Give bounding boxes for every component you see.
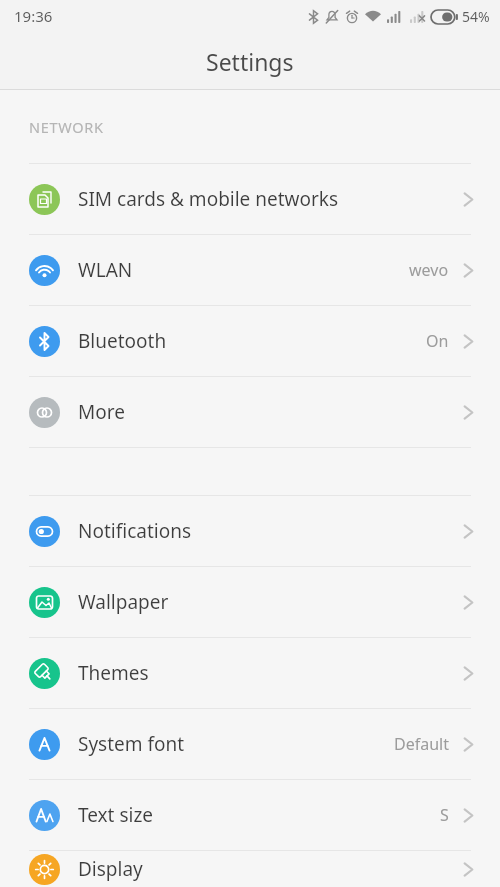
staticText: wevo: [409, 259, 449, 281]
staticText: Settings: [206, 46, 294, 77]
button[interactable]: System font: [0, 709, 500, 779]
button[interactable]: Bluetooth: [0, 306, 500, 376]
staticText: Display: [78, 856, 463, 882]
staticText: S: [440, 804, 449, 826]
button[interactable]: SIM cards & mobile networks: [0, 164, 500, 234]
staticText: SIM cards & mobile networks: [78, 186, 463, 212]
button[interactable]: Notifications: [0, 496, 500, 566]
staticText: 19:36: [14, 6, 53, 26]
button[interactable]: Text size: [0, 780, 500, 850]
staticText: Themes: [78, 660, 463, 686]
staticText: More: [78, 399, 463, 425]
staticText: Wallpaper: [78, 589, 463, 615]
staticText: System font: [78, 731, 394, 757]
button[interactable]: Themes: [0, 638, 500, 708]
staticText: NETWORK: [29, 117, 104, 137]
staticText: Notifications: [78, 518, 463, 544]
staticText: 54%: [462, 7, 490, 26]
button[interactable]: WLAN: [0, 235, 500, 305]
button[interactable]: Display: [0, 851, 500, 887]
staticText: Text size: [78, 802, 440, 828]
staticText: Bluetooth: [78, 328, 426, 354]
button[interactable]: More: [0, 377, 500, 447]
staticText: Default: [394, 733, 449, 755]
staticText: WLAN: [78, 257, 409, 283]
staticText: On: [426, 330, 449, 352]
button[interactable]: Wallpaper: [0, 567, 500, 637]
